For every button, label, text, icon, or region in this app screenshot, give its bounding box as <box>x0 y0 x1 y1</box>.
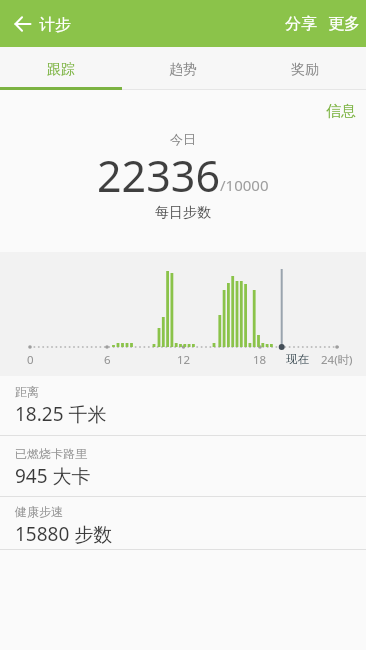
button[interactable]: 更多 <box>324 10 364 38</box>
staticText: /10000 <box>220 175 269 195</box>
staticText: 0 <box>27 352 34 368</box>
staticText: 6 <box>104 352 111 368</box>
staticText: 分享 <box>285 14 317 34</box>
staticText: 每日步数 <box>155 204 211 222</box>
staticText: 更多 <box>328 14 360 34</box>
staticText: 奖励 <box>291 61 319 79</box>
staticText: 18 <box>253 352 267 368</box>
button[interactable]: 分享 <box>281 10 321 38</box>
staticText: 18.25 千米 <box>15 401 107 427</box>
staticText: 22336 <box>97 146 220 205</box>
button[interactable]: 信息 <box>326 102 356 121</box>
staticText: 距离 <box>15 384 39 399</box>
staticText: 15880 步数 <box>15 521 113 547</box>
staticText: 24(时) <box>321 352 353 368</box>
button[interactable]: 趋势 <box>122 47 244 90</box>
staticText: 今日 <box>170 131 196 147</box>
staticText: 945 大卡 <box>15 463 91 489</box>
staticText: 健康步速 <box>15 504 63 519</box>
button[interactable]: 健康步速 <box>0 497 366 550</box>
staticText: 趋势 <box>169 61 197 79</box>
button[interactable]: 跟踪 <box>0 47 122 90</box>
staticText: 现在 <box>286 352 309 366</box>
staticText: 已燃烧卡路里 <box>15 446 87 461</box>
staticText: 12 <box>177 352 191 368</box>
staticText: 计步 <box>39 15 71 35</box>
staticText: 信息 <box>326 102 356 121</box>
button[interactable]: 距离 <box>0 376 366 436</box>
staticText: 跟踪 <box>47 61 75 79</box>
button[interactable] <box>12 13 34 35</box>
button[interactable]: 已燃烧卡路里 <box>0 436 366 497</box>
button[interactable]: 奖励 <box>244 47 366 90</box>
